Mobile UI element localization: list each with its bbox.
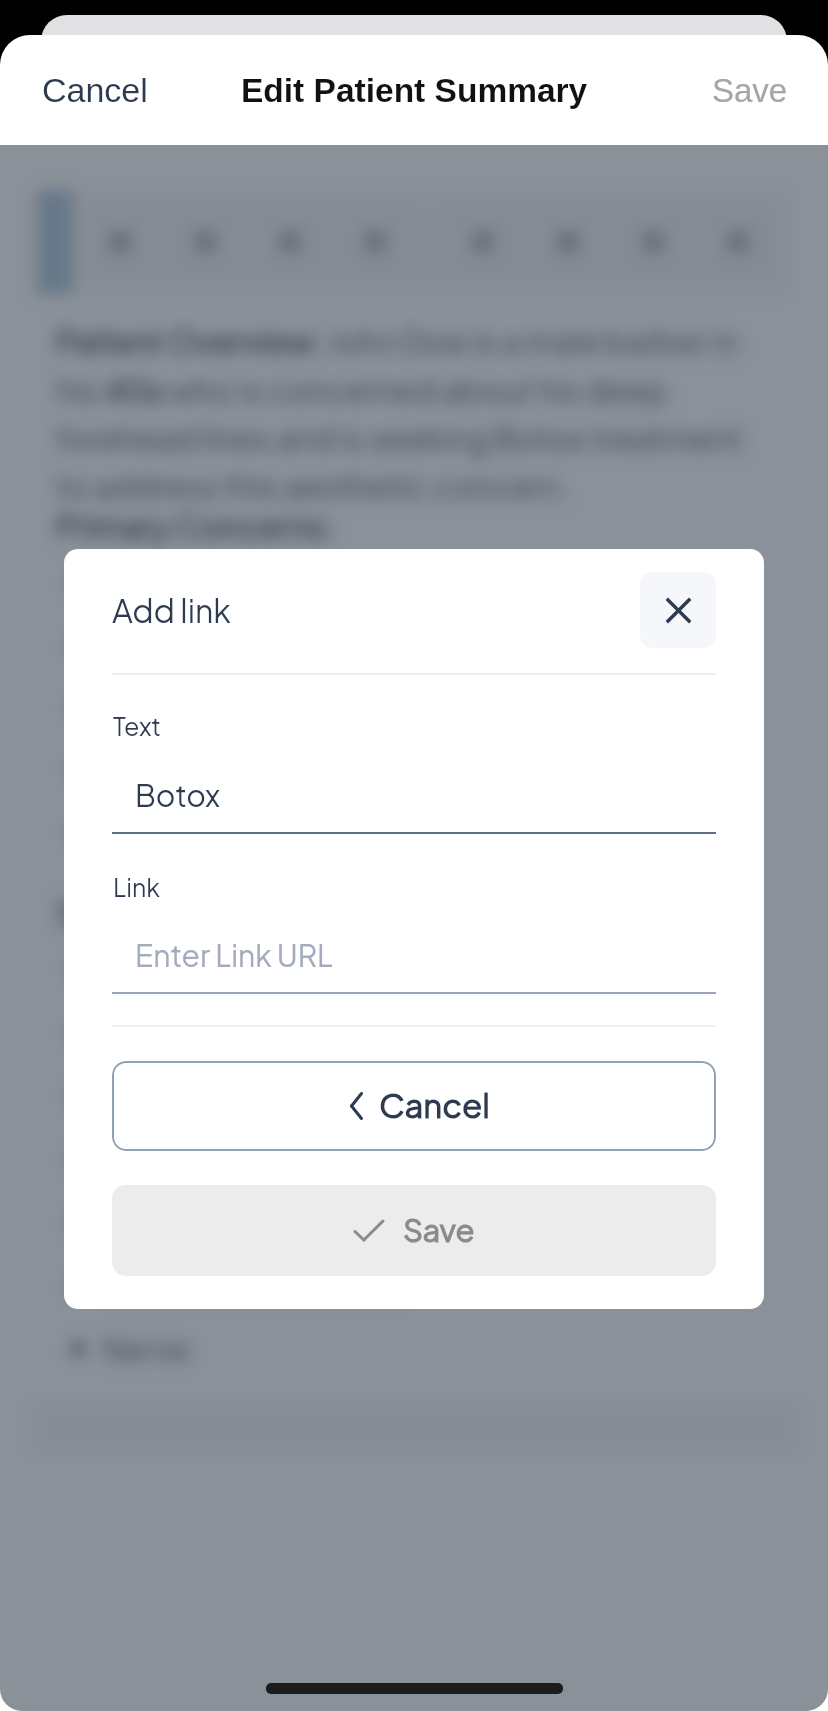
staticText: Cancel (379, 1084, 490, 1126)
staticText: Save (403, 1210, 475, 1249)
staticText: Add link (112, 590, 231, 630)
staticText: Treatment Plan: (56, 895, 290, 935)
staticText: Lateral canthal 12 units (103, 1077, 428, 1116)
staticText: Deep forehead lines (103, 562, 399, 601)
staticText: Assess muscle strength (103, 1203, 448, 1242)
staticText: Follow-up in two weeks (103, 1140, 447, 1179)
staticText: Glabella 15 units (103, 1014, 337, 1053)
staticText: Primary Concerns: (56, 506, 333, 546)
button[interactable]: Save (712, 72, 788, 109)
button[interactable]: Cancel (112, 1061, 716, 1151)
staticText: Crow's feet around eyes (103, 688, 458, 727)
staticText: Link (113, 871, 161, 902)
staticText: Patient Overview: John Doe is a male bar… (56, 321, 758, 506)
staticText: Botox 20 units forehead (103, 951, 455, 990)
staticText: Text (113, 710, 162, 741)
staticText: Edit Patient Summary (241, 72, 588, 109)
staticText: Enter Link URL (135, 936, 333, 974)
button[interactable]: Cancel (42, 71, 148, 109)
button[interactable]: Close (640, 572, 716, 648)
staticText: Nerve (103, 1329, 191, 1368)
staticText: Review in four weeks (103, 1266, 404, 1305)
staticText: Desire for natural result (103, 751, 438, 790)
button[interactable]: Save (112, 1185, 716, 1276)
staticText: Minimal downtime needed (103, 814, 491, 853)
staticText: Botox (135, 776, 220, 814)
